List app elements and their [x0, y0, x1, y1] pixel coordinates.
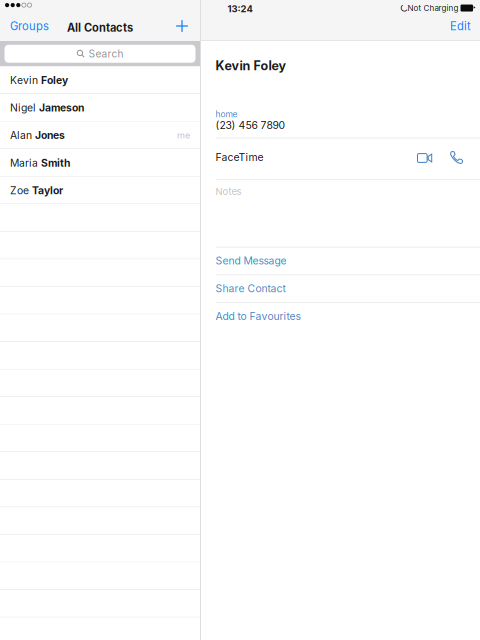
button[interactable]: Add to Favourites — [201, 302, 480, 330]
staticText: 13:24 — [227, 3, 252, 14]
button[interactable]: FaceTime video — [409, 146, 439, 170]
staticText: Groups — [10, 19, 49, 33]
staticText: Kevin Foley — [215, 58, 286, 73]
button[interactable]: Add contact — [165, 14, 198, 37]
button[interactable]: Kevin Foley — [0, 66, 200, 94]
button[interactable]: Maria Smith — [0, 149, 200, 177]
staticText: Search — [88, 48, 123, 60]
staticText: Share Contact — [215, 282, 285, 295]
button[interactable]: Share Contact — [201, 275, 480, 302]
button[interactable]: Edit — [440, 14, 480, 38]
staticText: Add to Favourites — [215, 310, 300, 323]
staticText: Maria Smith — [10, 157, 70, 169]
staticText: FaceTime — [215, 151, 263, 164]
staticText: home — [215, 109, 237, 119]
staticText: (23) 456 7890 — [215, 119, 285, 132]
staticText: Send Message — [215, 254, 286, 267]
staticText: Edit — [450, 19, 471, 33]
staticText: Nigel Jameson — [10, 102, 84, 114]
button[interactable]: FaceTime audio — [442, 144, 470, 170]
staticText: Notes — [215, 186, 241, 197]
staticText: Not Charging — [407, 3, 460, 13]
staticText: Alan Jones — [10, 129, 65, 141]
button[interactable]: Send Message — [201, 247, 480, 275]
button[interactable]: Groups — [0, 14, 59, 38]
staticText: Zoe Taylor — [10, 184, 63, 197]
button[interactable]: Zoe Taylor — [0, 177, 200, 204]
button[interactable]: Nigel Jameson — [0, 94, 200, 122]
staticText: me — [177, 130, 190, 141]
staticText: All Contacts — [67, 21, 133, 34]
button[interactable]: Alan Jones — [0, 122, 200, 149]
staticText: Kevin Foley — [10, 74, 68, 86]
